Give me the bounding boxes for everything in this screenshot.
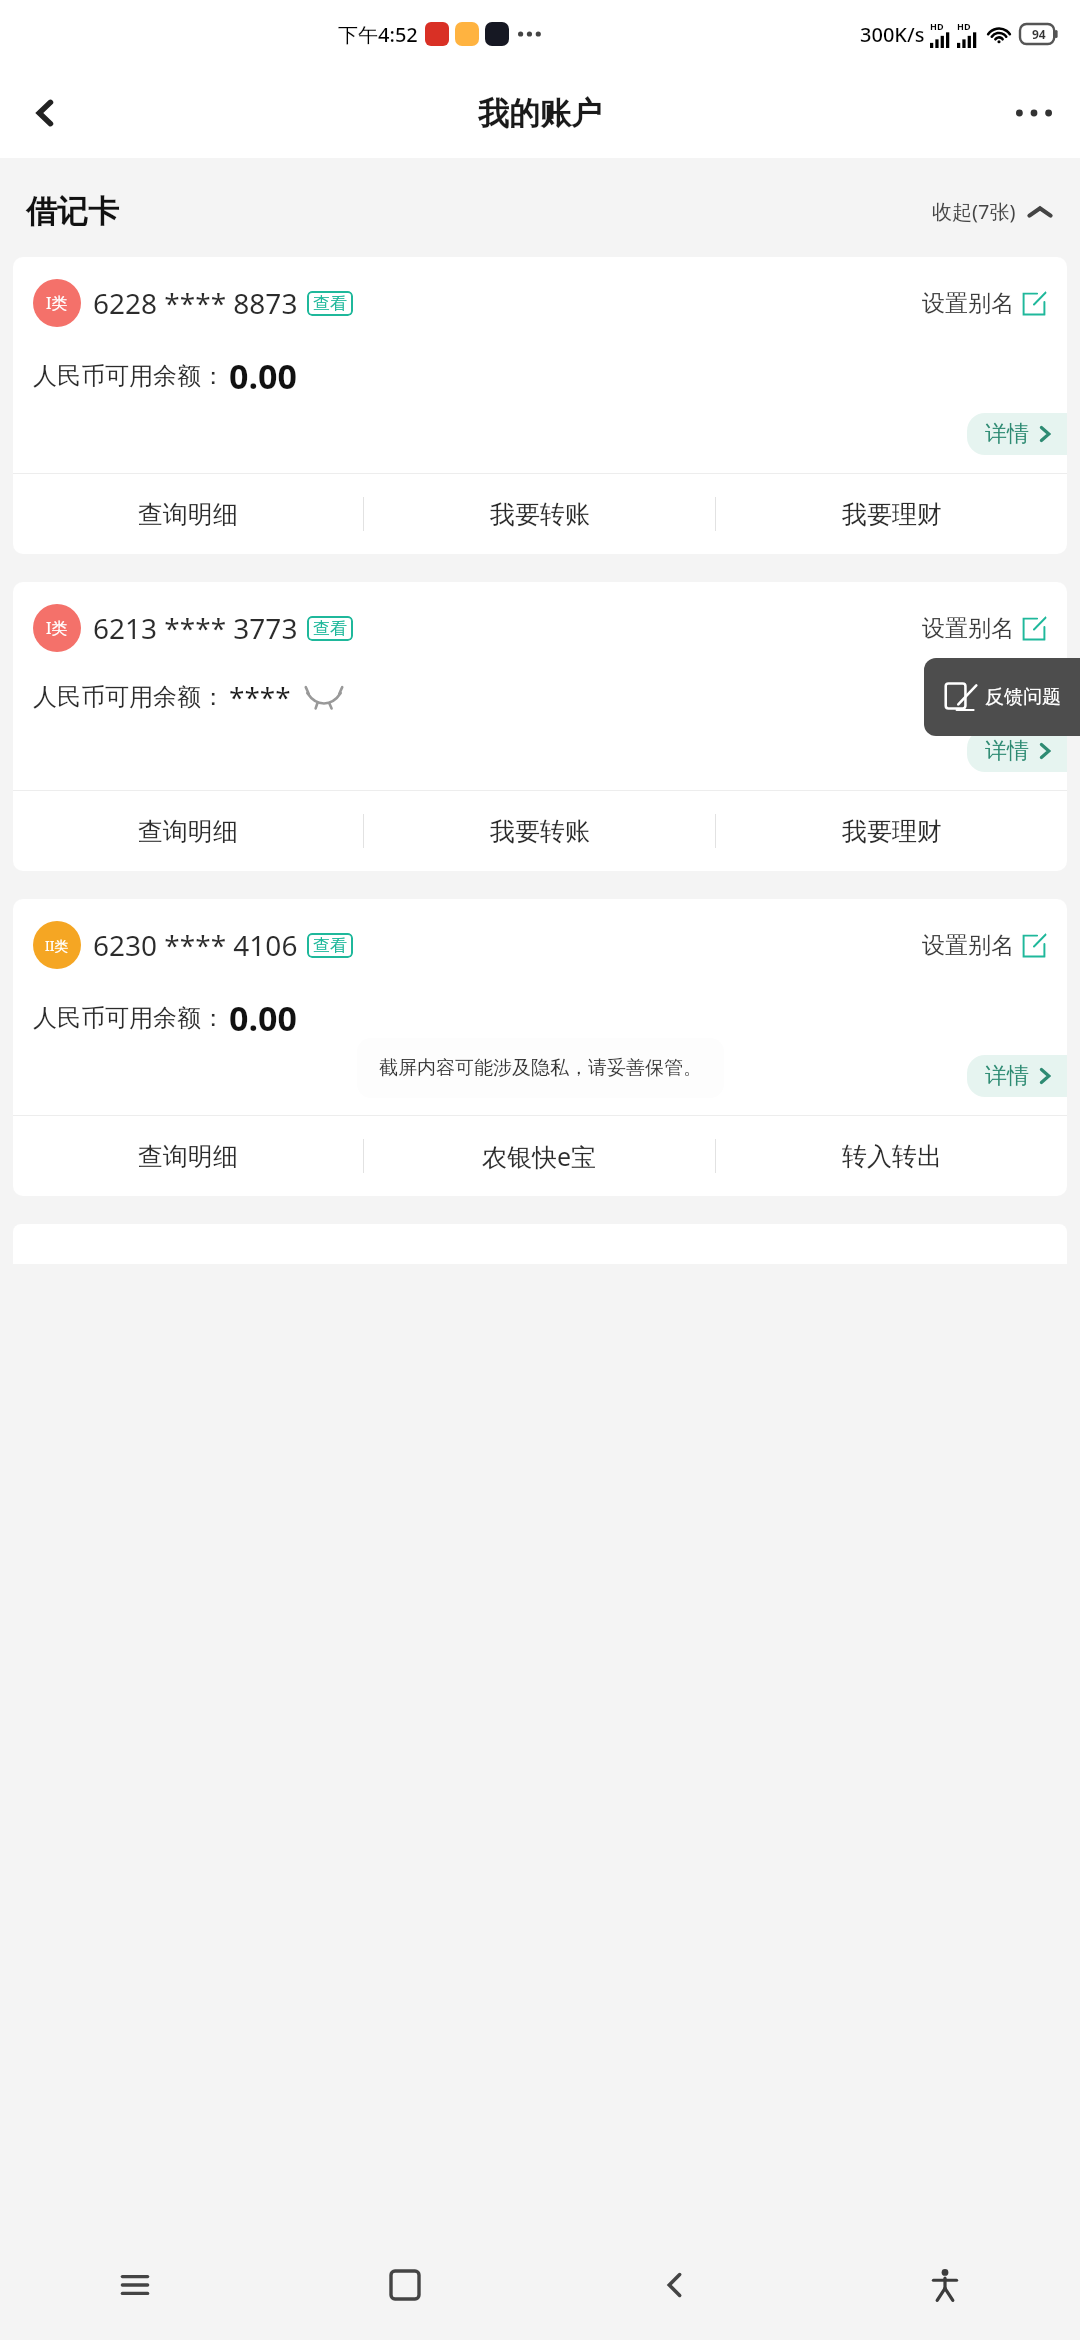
button[interactable]: 查看 [307,291,353,316]
staticText: 详情 [985,1062,1029,1090]
staticText: 查看 [313,293,347,314]
staticText: 查询明细 [138,499,238,530]
button[interactable]: 设置别名 [922,289,1047,318]
button[interactable]: 详情 [967,1055,1067,1097]
button[interactable]: 我要理财 [716,474,1067,554]
button[interactable]: 反馈问题 [924,658,1080,736]
staticText: 我的账户 [478,94,602,133]
staticText: 借记卡 [26,192,119,231]
staticText: HD [930,20,944,32]
button[interactable]: 返回 [14,81,78,145]
button[interactable]: 设置别名 [922,931,1047,960]
staticText: 反馈问题 [985,685,1061,709]
button[interactable]: 收起(7张) [928,194,1056,229]
button[interactable]: 我要转账 [364,791,715,871]
button[interactable]: 详情 [967,730,1067,772]
staticText: 人民币可用余额： [33,361,225,391]
staticText: 查询明细 [138,1141,238,1172]
staticText: I类 [46,292,68,314]
button[interactable]: 最近任务 [0,2230,270,2340]
button[interactable]: 设置别名 [922,614,1047,643]
staticText: 收起(7张) [932,198,1016,225]
staticText: 设置别名 [922,931,1014,960]
staticText: 详情 [985,420,1029,448]
button[interactable]: 我要转账 [364,474,715,554]
button[interactable]: 查询明细 [13,791,363,871]
button[interactable]: 主页 [270,2230,540,2340]
staticText: 0.00 [229,995,297,1041]
staticText: HD [957,20,971,32]
button[interactable]: 我要理财 [716,791,1067,871]
staticText: 人民币可用余额： [33,682,225,712]
button[interactable]: 详情 [967,413,1067,455]
staticText: 我要转账 [490,499,590,530]
staticText: 0.00 [229,353,297,399]
staticText: 6228 **** 8873 [93,284,298,322]
staticText: 300K/s [860,21,925,48]
button[interactable]: 更多 [1002,81,1066,145]
staticText: 设置别名 [922,614,1014,643]
button[interactable]: 查询明细 [13,474,363,554]
staticText: 我要理财 [842,816,942,847]
staticText: 设置别名 [922,289,1014,318]
staticText: 人民币可用余额： [33,1003,225,1033]
staticText: II类 [45,936,69,955]
staticText: 转入转出 [842,1141,942,1172]
staticText: 查看 [313,618,347,639]
staticText: 我要转账 [490,816,590,847]
button[interactable]: 无障碍 [810,2230,1080,2340]
staticText: 94 [1032,26,1046,42]
staticText: 6230 **** 4106 [93,926,298,964]
button[interactable]: 返回 [540,2230,810,2340]
staticText: 查询明细 [138,816,238,847]
button[interactable]: 查看 [307,933,353,958]
staticText: 农银快e宝 [482,1139,597,1173]
button[interactable]: 查询明细 [13,1116,363,1196]
staticText: 下午4:52 [338,21,418,48]
staticText: I类 [46,617,68,639]
staticText: 6213 **** 3773 [93,609,298,647]
staticText: 截屏内容可能涉及隐私，请妥善保管。 [379,1056,702,1080]
staticText: 查看 [313,935,347,956]
staticText: 详情 [985,737,1029,765]
button[interactable]: 转入转出 [716,1116,1067,1196]
staticText: 我要理财 [842,499,942,530]
button[interactable]: 农银快e宝 [364,1116,715,1196]
button[interactable]: 查看 [307,616,353,641]
staticText: **** [229,678,291,716]
